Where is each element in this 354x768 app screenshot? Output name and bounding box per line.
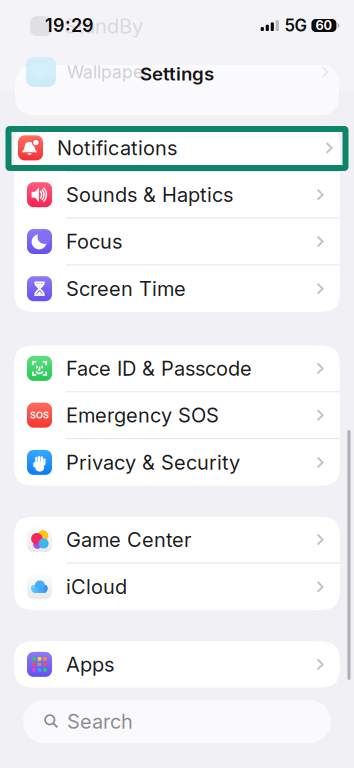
staticText: iCloud (66, 575, 127, 599)
staticText: Game Center (66, 527, 191, 552)
button[interactable]: Search (23, 700, 331, 743)
staticText: Emergency SOS (66, 403, 219, 427)
staticText: Search (67, 709, 133, 734)
staticText: 5G (284, 15, 306, 36)
staticText: Focus (66, 229, 122, 254)
button[interactable]: Sounds & Haptics (14, 172, 340, 218)
staticText: Face ID & Passcode (66, 356, 252, 380)
button[interactable]: Focus (14, 219, 340, 264)
staticText: SOS (30, 410, 49, 421)
staticText: Wallpaper (67, 61, 150, 82)
staticText: Screen Time (66, 277, 186, 301)
button[interactable]: Notifications (14, 125, 340, 171)
staticText: Privacy & Security (66, 450, 240, 474)
staticText: 60 (315, 18, 332, 33)
staticText: Sounds & Haptics (66, 183, 233, 207)
button[interactable]: SOS (14, 392, 340, 438)
staticText: Notifications (57, 136, 177, 160)
button[interactable]: Screen Time (14, 265, 340, 312)
staticText: StandBy (64, 14, 143, 38)
button[interactable]: Face ID & Passcode (14, 345, 340, 391)
button[interactable]: iCloud (14, 563, 340, 610)
button[interactable]: Apps (14, 641, 340, 688)
button[interactable]: Privacy & Security (14, 439, 340, 486)
button[interactable]: Game Center (14, 517, 340, 562)
staticText: 19:29 (45, 15, 94, 36)
staticText: Apps (66, 652, 114, 676)
staticText: Settings (140, 62, 214, 85)
